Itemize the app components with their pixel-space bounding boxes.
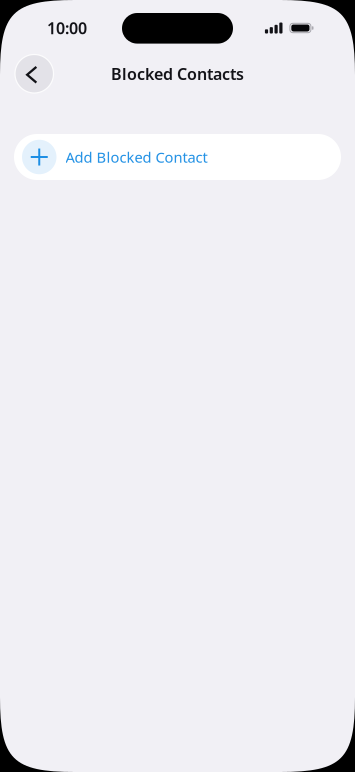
button[interactable]: Back	[15, 54, 53, 93]
button[interactable]: Add Blocked Contact	[14, 134, 341, 180]
staticText: Blocked Contacts	[111, 63, 244, 84]
staticText: Add Blocked Contact	[65, 147, 207, 167]
staticText: 10:00	[47, 17, 87, 39]
